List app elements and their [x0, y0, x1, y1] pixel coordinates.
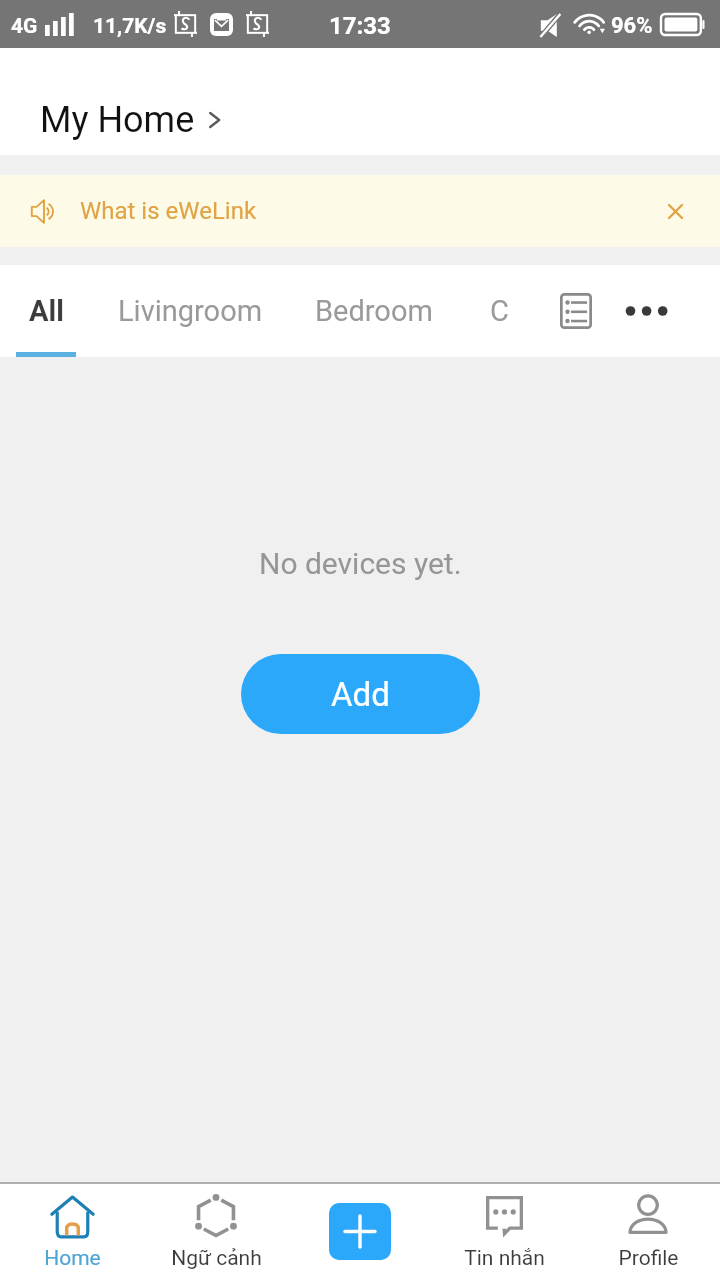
staticText: Add	[331, 675, 390, 714]
staticText: My Home	[40, 99, 195, 141]
button[interactable]: Ngữ cảnh	[144, 1184, 288, 1280]
button[interactable]: All	[16, 265, 76, 357]
staticText: 11,7K/s	[93, 14, 167, 39]
button[interactable]: What is eWeLink	[0, 175, 720, 247]
button[interactable]: Livingroom	[110, 265, 270, 357]
staticText: 17:33	[329, 12, 391, 40]
button[interactable]: Bedroom	[308, 265, 439, 357]
staticText: All	[29, 294, 64, 328]
staticText: C	[490, 294, 509, 328]
button[interactable]: Tin nhắn	[432, 1184, 576, 1280]
button[interactable]: Add device	[329, 1203, 391, 1260]
button[interactable]: My Home	[40, 99, 221, 141]
staticText: Livingroom	[118, 294, 263, 328]
staticText: Bedroom	[315, 294, 433, 328]
staticText: No devices yet.	[259, 546, 462, 581]
button[interactable]: List view	[545, 265, 607, 357]
button[interactable]: Add	[241, 654, 480, 734]
staticText: What is eWeLink	[80, 197, 257, 225]
staticText: Tin nhắn	[464, 1246, 545, 1271]
staticText: 96%	[611, 13, 653, 39]
button[interactable]: More options	[614, 265, 678, 357]
staticText: Ngữ cảnh	[171, 1246, 262, 1271]
button[interactable]: C	[479, 265, 519, 357]
button[interactable]: Profile	[576, 1184, 720, 1280]
staticText: Profile	[618, 1246, 679, 1271]
button[interactable]: Close banner	[657, 193, 693, 229]
staticText: 4G	[11, 14, 38, 39]
staticText: Home	[44, 1246, 101, 1271]
button[interactable]: Home	[0, 1184, 144, 1280]
